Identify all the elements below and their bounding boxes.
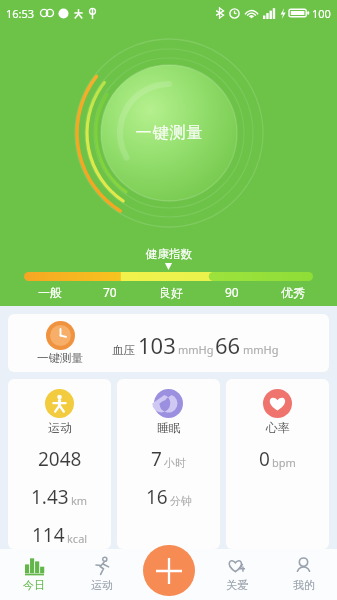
button[interactable]: 一键测量 [74,38,264,228]
staticText: kcal [67,531,88,546]
staticText: 优秀 [281,285,305,300]
staticText: 良好 [159,285,183,300]
button[interactable]: 我的 [270,549,337,600]
staticText: 16:53 [6,6,35,21]
button[interactable]: 运动 [8,379,111,549]
button[interactable]: 一键测量 [8,314,329,372]
staticText: 我的 [293,578,315,592]
staticText: 70 [103,284,117,300]
staticText: 一般 [38,285,62,300]
staticText: bpm [272,455,296,470]
staticText: 一键测量 [135,123,203,143]
staticText: 114 [32,522,65,548]
staticText: 今日 [23,578,45,592]
staticText: 关爱 [226,578,248,592]
staticText: 16 [146,484,168,510]
staticText: 运动 [48,420,72,435]
staticText: 66 [215,330,241,360]
staticText: mmHg [178,342,214,357]
button[interactable]: 今日 [0,549,68,600]
staticText: 分钟 [170,494,192,508]
staticText: 7 [151,446,162,472]
staticText: 一键测量 [37,351,83,365]
staticText: mmHg [243,342,279,357]
staticText: 睡眠 [157,420,181,435]
staticText: 心率 [266,420,290,435]
staticText: 2048 [38,446,82,472]
staticText: 血压 [112,343,135,357]
button[interactable]: 心率 [226,379,329,549]
staticText: 小时 [164,456,186,470]
staticText: 103 [138,330,176,360]
button[interactable]: 运动 [68,549,136,600]
staticText: km [71,493,88,508]
staticText: 0 [259,446,270,472]
button[interactable]: 关爱 [203,549,270,600]
button[interactable]: 添加 [143,545,195,596]
staticText: 运动 [91,578,113,592]
staticText: 90 [225,284,239,300]
staticText: 1.43 [31,484,69,510]
staticText: 健康指数 [146,247,192,261]
staticText: 100 [312,6,331,21]
button[interactable]: 睡眠 [117,379,220,549]
